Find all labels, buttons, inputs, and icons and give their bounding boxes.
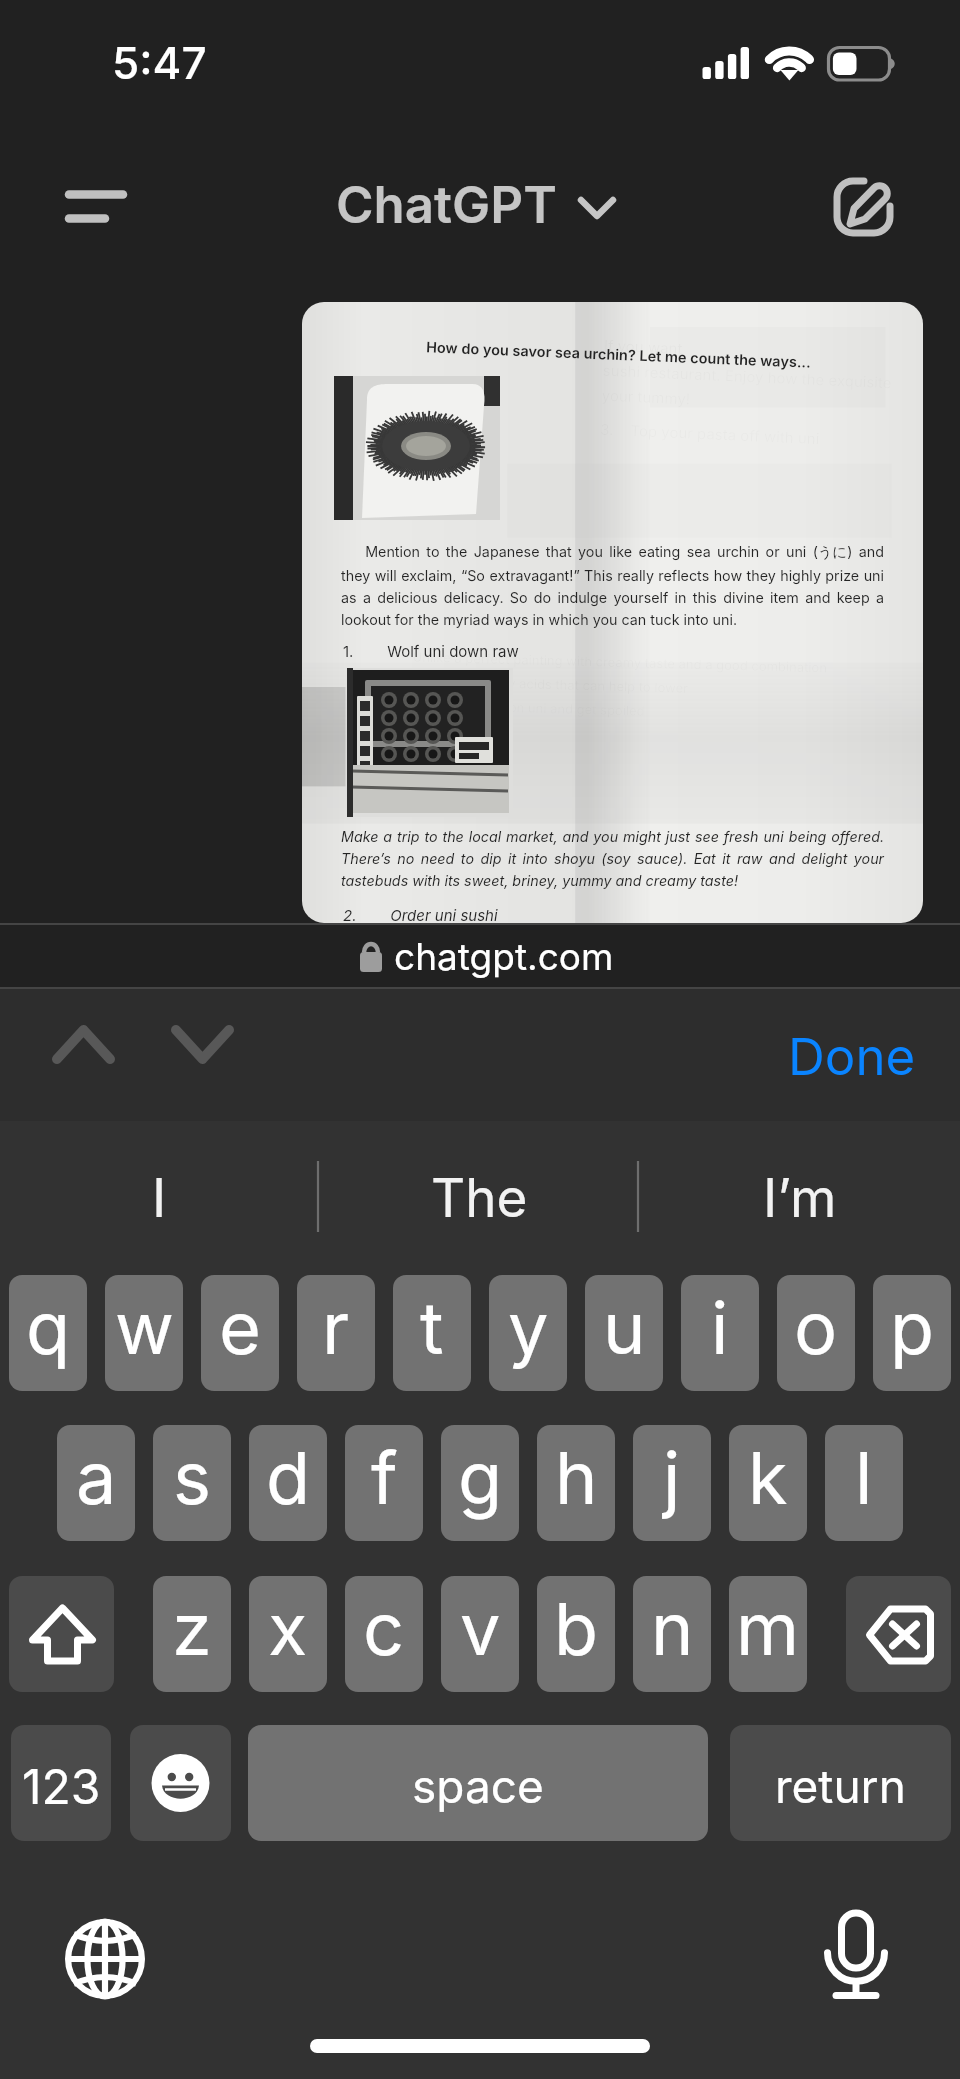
button[interactable]: z	[153, 1576, 231, 1692]
staticText: n	[651, 1585, 694, 1672]
staticText: I	[152, 1166, 167, 1230]
staticText: k	[748, 1434, 788, 1521]
staticText: Get your hands on uni and get spoiled	[411, 697, 645, 719]
staticText: z	[172, 1585, 212, 1672]
staticText: 123	[22, 1757, 101, 1815]
button[interactable]: Done	[772, 1009, 932, 1105]
staticText: q	[26, 1284, 71, 1371]
staticText: g	[458, 1434, 503, 1521]
button[interactable]: a	[57, 1425, 135, 1541]
staticText: u	[603, 1284, 646, 1371]
button[interactable]: i	[681, 1275, 759, 1391]
staticText: t	[420, 1284, 444, 1371]
staticText: 1. Wolf uni down raw	[343, 642, 519, 660]
staticText: f	[371, 1434, 398, 1521]
button[interactable]: ChatGPT	[336, 174, 557, 248]
button[interactable]: m	[729, 1576, 807, 1692]
button[interactable]: The	[320, 1121, 638, 1275]
button[interactable]: f	[345, 1425, 423, 1541]
staticText: l	[855, 1434, 873, 1521]
button[interactable]: k	[729, 1425, 807, 1541]
staticText: a	[76, 1434, 117, 1521]
staticText: of omega-3 fatty acids that can help to …	[412, 673, 689, 696]
staticText: s	[173, 1434, 212, 1521]
staticText: x	[268, 1585, 308, 1672]
staticText: b	[554, 1585, 599, 1672]
staticText: h	[555, 1434, 598, 1521]
staticText: o	[794, 1284, 838, 1371]
staticText: 2. Order uni sushi	[343, 906, 498, 923]
staticText: If you want	[604, 336, 683, 357]
staticText: 5:47	[112, 36, 207, 89]
staticText: m	[736, 1585, 800, 1672]
button[interactable]: b	[537, 1576, 615, 1692]
staticText: e	[219, 1284, 261, 1371]
button[interactable]: v	[441, 1576, 519, 1692]
staticText: d	[266, 1434, 311, 1521]
staticText: ChatGPT	[336, 174, 557, 236]
staticText: Make a trip to the local market, and you…	[341, 828, 884, 889]
button[interactable]: I’m	[640, 1121, 960, 1275]
button[interactable]: chatgpt.com	[356, 934, 614, 979]
staticText: y	[508, 1284, 549, 1371]
staticText: Unlike a perfect painting with creamy ta…	[412, 649, 828, 675]
button[interactable]: u	[585, 1275, 663, 1391]
button[interactable]: Dictation	[806, 1903, 906, 2003]
staticText: return	[775, 1758, 906, 1814]
button[interactable]: p	[873, 1275, 951, 1391]
staticText: w	[115, 1284, 174, 1371]
staticText: your tummy!	[601, 386, 691, 408]
button[interactable]: x	[249, 1576, 327, 1692]
button[interactable]: t	[393, 1275, 471, 1391]
button[interactable]: g	[441, 1425, 519, 1541]
button[interactable]: e	[201, 1275, 279, 1391]
button[interactable]: q	[9, 1275, 87, 1391]
button[interactable]: d	[249, 1425, 327, 1541]
button[interactable]: j	[633, 1425, 711, 1541]
button[interactable]: c	[345, 1576, 423, 1692]
staticText: 3. Top your pasta off with uni	[600, 420, 820, 447]
staticText: chatgpt.com	[394, 934, 614, 979]
button[interactable]: I	[0, 1121, 318, 1275]
staticText: p	[890, 1284, 935, 1371]
button[interactable]: Shift	[9, 1576, 114, 1692]
button[interactable]: o	[777, 1275, 855, 1391]
staticText: i	[711, 1284, 729, 1371]
button[interactable]: space	[248, 1725, 708, 1841]
button[interactable]: n	[633, 1576, 711, 1692]
button[interactable]: Emoji	[130, 1725, 231, 1841]
staticText: I’m	[763, 1166, 837, 1230]
staticText: v	[460, 1585, 501, 1672]
staticText: The	[431, 1166, 528, 1230]
button[interactable]: y	[489, 1275, 567, 1391]
button[interactable]: Backspace	[846, 1576, 951, 1692]
staticText: Mention to the Japanese that you like ea…	[341, 543, 884, 628]
staticText: r	[322, 1284, 350, 1371]
staticText: c	[363, 1585, 405, 1672]
button[interactable]: 123	[11, 1725, 111, 1841]
button[interactable]: s	[153, 1425, 231, 1541]
button[interactable]: l	[825, 1425, 903, 1541]
button[interactable]: New chat	[826, 170, 902, 244]
staticText: j	[663, 1434, 681, 1521]
staticText: How do you savor sea urchin? Let me coun…	[426, 338, 811, 372]
button[interactable]: h	[537, 1425, 615, 1541]
button[interactable]: Menu	[40, 155, 152, 255]
staticText: Done	[788, 1026, 916, 1088]
button[interactable]: r	[297, 1275, 375, 1391]
staticText: space	[412, 1758, 544, 1814]
button[interactable]: Next field	[161, 1015, 245, 1095]
button[interactable]: Previous field	[42, 1015, 126, 1095]
staticText: sushi restaurant. Enjoy how the exquisit…	[602, 361, 892, 391]
button[interactable]: w	[105, 1275, 183, 1391]
button[interactable]: return	[730, 1725, 951, 1841]
button[interactable]: Change keyboard	[61, 1915, 149, 2003]
